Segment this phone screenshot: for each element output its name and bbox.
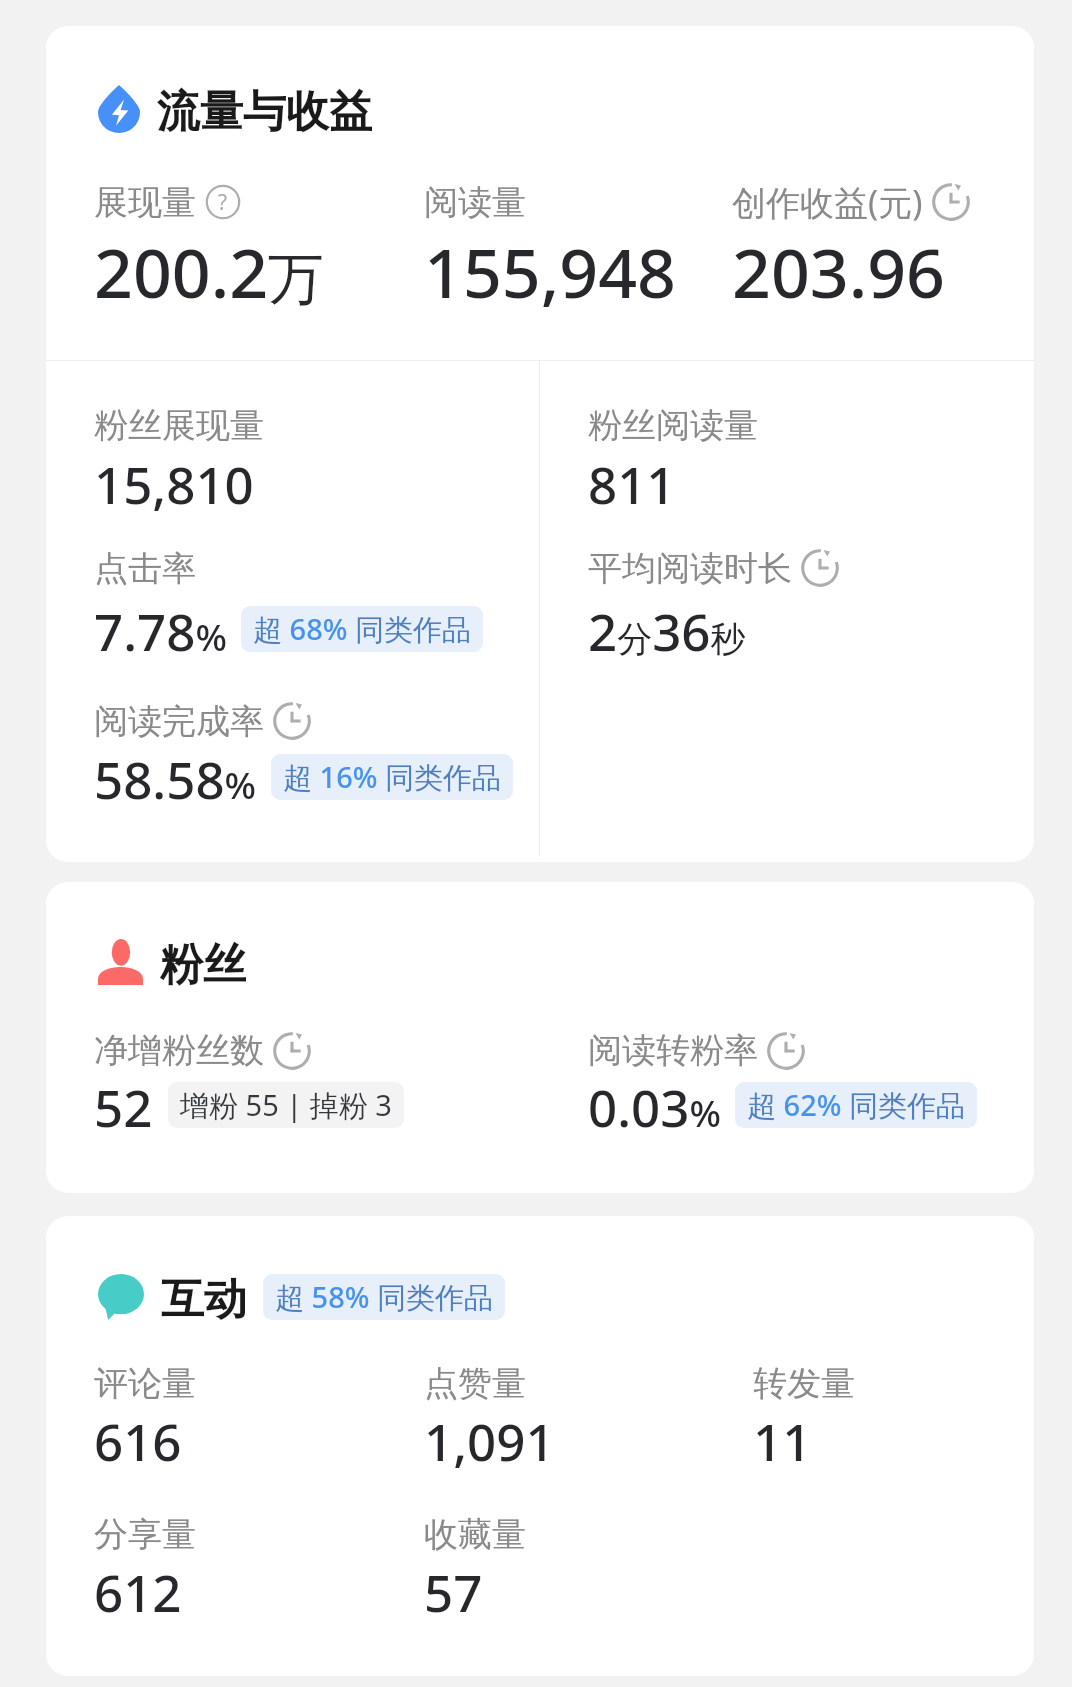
button[interactable]: 超 16% 同类作品 <box>271 754 513 800</box>
staticText: 评论量 <box>94 1362 196 1405</box>
staticText: 点击率 <box>94 547 196 590</box>
button[interactable]: 粉丝 <box>98 938 246 986</box>
staticText: 616 <box>94 1406 182 1472</box>
button[interactable]: 互动 <box>98 1273 505 1321</box>
staticText: 点赞量 <box>424 1362 526 1405</box>
staticText: 15,810 <box>94 449 254 515</box>
staticText: 超 68% 同类作品 <box>253 609 471 649</box>
button[interactable]: 超 62% 同类作品 <box>735 1082 977 1128</box>
staticText: 58.58% <box>94 744 257 810</box>
staticText: 粉丝 <box>160 938 246 986</box>
other: 互动 <box>98 1274 144 1320</box>
staticText: 11 <box>753 1406 812 1472</box>
staticText: 粉丝展现量 <box>94 404 264 447</box>
staticText: 超 62% 同类作品 <box>747 1085 965 1125</box>
staticText: 155,948 <box>424 225 676 313</box>
staticText: 57 <box>424 1557 483 1623</box>
button[interactable]: 超 58% 同类作品 <box>263 1274 505 1320</box>
staticText: 7.78% <box>94 596 227 662</box>
staticText: 增粉 55 | 掉粉 3 <box>180 1085 392 1125</box>
staticText: 粉丝阅读量 <box>588 404 758 447</box>
other: 粉丝 <box>98 939 143 985</box>
staticText: 展现量 <box>94 181 196 224</box>
staticText: 分享量 <box>94 1513 196 1556</box>
staticText: 2分36秒 <box>588 596 746 662</box>
staticText: 52 <box>94 1072 153 1138</box>
staticText: 收藏量 <box>424 1513 526 1556</box>
other: 流量与收益 <box>98 85 140 133</box>
staticText: 811 <box>588 449 676 515</box>
staticText: 创作收益(元) <box>732 179 923 225</box>
staticText: ? <box>218 188 228 216</box>
staticText: 转发量 <box>753 1362 855 1405</box>
staticText: 平均阅读时长 <box>588 547 792 590</box>
staticText: 阅读完成率 <box>94 700 264 743</box>
staticText: 0.03% <box>588 1072 721 1138</box>
staticText: 净增粉丝数 <box>94 1029 264 1072</box>
staticText: 200.2万 <box>94 225 325 313</box>
staticText: 流量与收益 <box>157 85 372 133</box>
button[interactable]: 超 68% 同类作品 <box>241 606 483 652</box>
staticText: 互动 <box>161 1273 247 1321</box>
staticText: 1,091 <box>424 1406 555 1472</box>
staticText: 203.96 <box>732 225 945 313</box>
staticText: 612 <box>94 1557 182 1623</box>
staticText: 超 58% 同类作品 <box>275 1277 493 1317</box>
button[interactable]: 增粉 55 | 掉粉 3 <box>168 1082 404 1128</box>
staticText: 阅读量 <box>424 181 526 224</box>
button[interactable]: 流量与收益 <box>98 85 372 133</box>
staticText: 阅读转粉率 <box>588 1029 758 1072</box>
staticText: 超 16% 同类作品 <box>283 757 501 797</box>
